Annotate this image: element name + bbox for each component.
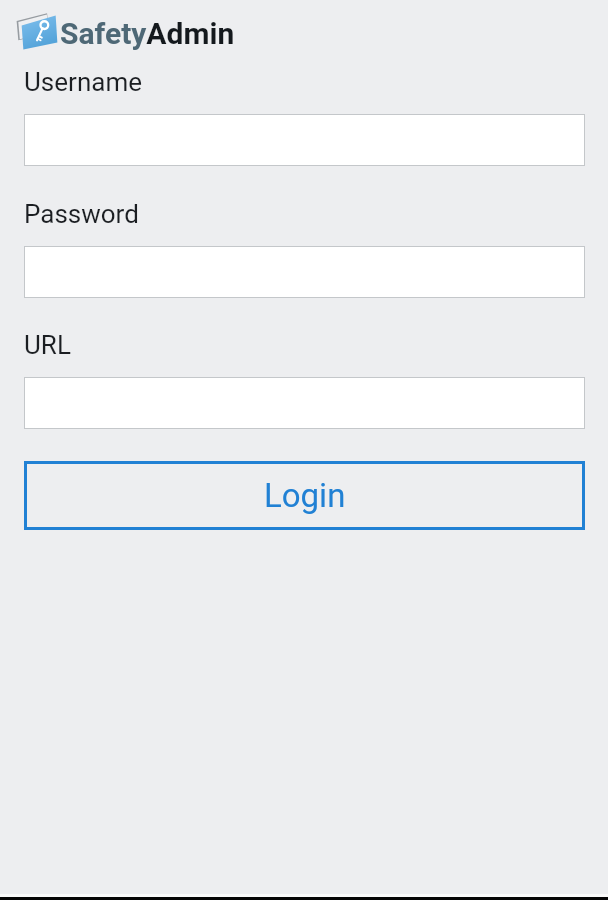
button[interactable]: Password input field: [24, 246, 585, 298]
button[interactable]: URL input field: [24, 377, 585, 429]
button[interactable]: Login: [24, 461, 585, 530]
staticText: Password: [24, 199, 139, 229]
staticText: Login: [264, 476, 346, 515]
staticText: URL: [24, 330, 71, 360]
staticText: SafetyAdmin: [60, 16, 235, 51]
button[interactable]: Username input field: [24, 114, 585, 166]
staticText: Username: [24, 67, 142, 97]
